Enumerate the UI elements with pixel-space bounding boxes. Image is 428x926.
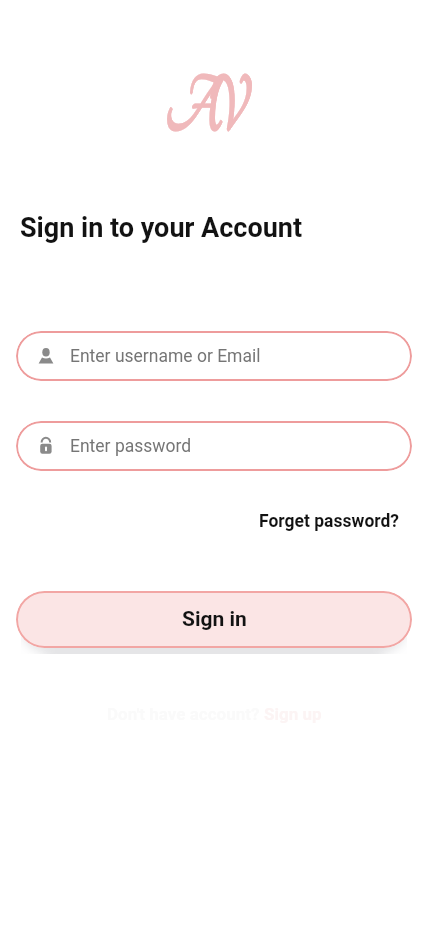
staticText: Enter username or Email [70,346,261,367]
button[interactable]: Enter username or Email [16,331,412,381]
button[interactable]: Enter password [16,421,412,471]
staticText: AV [165,65,231,151]
button[interactable]: Forget password? [259,511,400,532]
staticText: AV [167,65,233,151]
staticText: Enter password [70,436,192,457]
staticText: AV [165,65,231,151]
staticText: Sign in to your Account [20,212,303,244]
staticText: Sign in [182,607,247,632]
button[interactable]: Sign in [16,591,412,648]
button[interactable]: Sign up [264,704,322,724]
